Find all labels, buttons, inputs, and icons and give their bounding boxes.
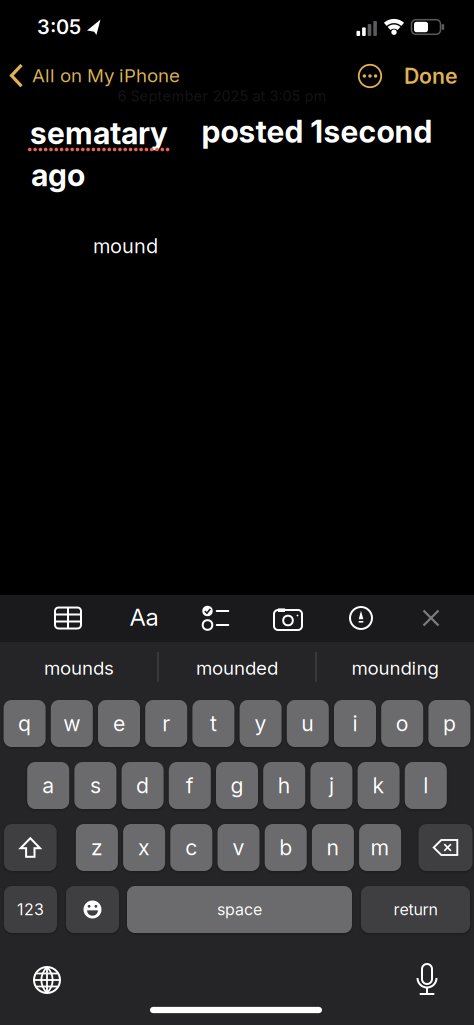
button[interactable]: p — [428, 700, 470, 747]
button[interactable]: Markup — [349, 606, 373, 630]
button[interactable]: Emoji — [66, 886, 119, 933]
button[interactable]: j — [310, 762, 352, 809]
button[interactable]: mounds — [4, 646, 154, 690]
button[interactable]: f — [169, 762, 211, 809]
staticText: b — [279, 835, 292, 860]
button[interactable]: v — [217, 824, 259, 871]
button[interactable]: Dictation — [415, 964, 439, 998]
staticText: s — [90, 773, 101, 798]
button[interactable]: Dismiss keyboard — [422, 609, 439, 626]
staticText: e — [113, 711, 125, 736]
button[interactable]: Done — [404, 63, 458, 89]
staticText: v — [232, 835, 244, 860]
staticText: z — [91, 835, 103, 860]
staticText: p — [443, 711, 456, 736]
button[interactable]: t — [192, 700, 234, 747]
staticText: c — [185, 835, 197, 860]
staticText: x — [138, 835, 150, 860]
staticText: r — [162, 711, 170, 736]
button[interactable]: return — [361, 886, 470, 933]
staticText: space — [217, 900, 262, 919]
staticText: n — [326, 835, 339, 860]
button[interactable]: i — [334, 700, 376, 747]
staticText: q — [18, 711, 31, 736]
button[interactable]: a — [27, 762, 69, 809]
staticText: k — [373, 773, 385, 798]
staticText: g — [230, 773, 243, 798]
button[interactable]: 123 — [4, 886, 57, 933]
button[interactable]: x — [123, 824, 165, 871]
button[interactable]: c — [170, 824, 212, 871]
staticText: return — [393, 900, 437, 919]
button[interactable]: z — [76, 824, 118, 871]
staticText: j — [329, 773, 334, 798]
button[interactable]: n — [312, 824, 354, 871]
button[interactable]: Next keyboard — [33, 966, 61, 994]
button[interactable]: d — [122, 762, 164, 809]
staticText: Done — [404, 63, 458, 89]
staticText: l — [423, 773, 428, 798]
staticText: o — [396, 711, 409, 736]
button[interactable]: u — [287, 700, 329, 747]
button[interactable]: k — [358, 762, 400, 809]
staticText: t — [210, 711, 217, 736]
staticText: 123 — [17, 900, 44, 919]
staticText: h — [278, 773, 291, 798]
button[interactable]: Insert table — [53, 605, 83, 631]
staticText: ago — [31, 157, 85, 193]
button[interactable]: mounded — [162, 646, 312, 690]
button[interactable]: More — [358, 64, 382, 88]
staticText: w — [63, 711, 80, 736]
staticText: mounds — [44, 657, 114, 679]
button[interactable]: o — [381, 700, 423, 747]
staticText: a — [42, 773, 54, 798]
staticText: y — [255, 711, 267, 736]
button[interactable]: Delete — [418, 824, 472, 871]
button[interactable]: e — [98, 700, 140, 747]
staticText: i — [352, 711, 357, 736]
staticText: 6 September 2025 at 3:05 pm — [117, 87, 326, 105]
staticText: 3:05 — [37, 15, 81, 39]
staticText: posted 1second — [201, 113, 432, 150]
staticText: mounded — [196, 657, 278, 679]
button[interactable]: b — [265, 824, 307, 871]
button[interactable]: y — [240, 700, 282, 747]
button[interactable]: space — [127, 886, 352, 933]
staticText: All on My iPhone — [32, 64, 180, 86]
button[interactable]: m — [359, 824, 401, 871]
button[interactable]: l — [405, 762, 447, 809]
staticText: f — [186, 773, 194, 798]
button[interactable]: All on My iPhone — [10, 64, 180, 87]
button[interactable]: Camera — [272, 605, 304, 631]
button[interactable]: mounding — [320, 646, 470, 690]
button[interactable]: q — [4, 700, 46, 747]
button[interactable]: g — [216, 762, 258, 809]
button[interactable]: s — [74, 762, 116, 809]
button[interactable]: Checklist — [198, 604, 230, 632]
button[interactable]: w — [51, 700, 93, 747]
button[interactable]: Formatting — [129, 603, 158, 631]
staticText: mounding — [351, 657, 438, 679]
staticText: sematary — [30, 115, 168, 151]
button[interactable]: Shift — [4, 824, 57, 871]
button[interactable]: h — [263, 762, 305, 809]
staticText: u — [301, 711, 314, 736]
staticText: mound — [93, 234, 158, 258]
button[interactable]: r — [145, 700, 187, 747]
staticText: d — [136, 773, 149, 798]
staticText: Aa — [129, 603, 158, 631]
staticText: m — [371, 835, 390, 860]
